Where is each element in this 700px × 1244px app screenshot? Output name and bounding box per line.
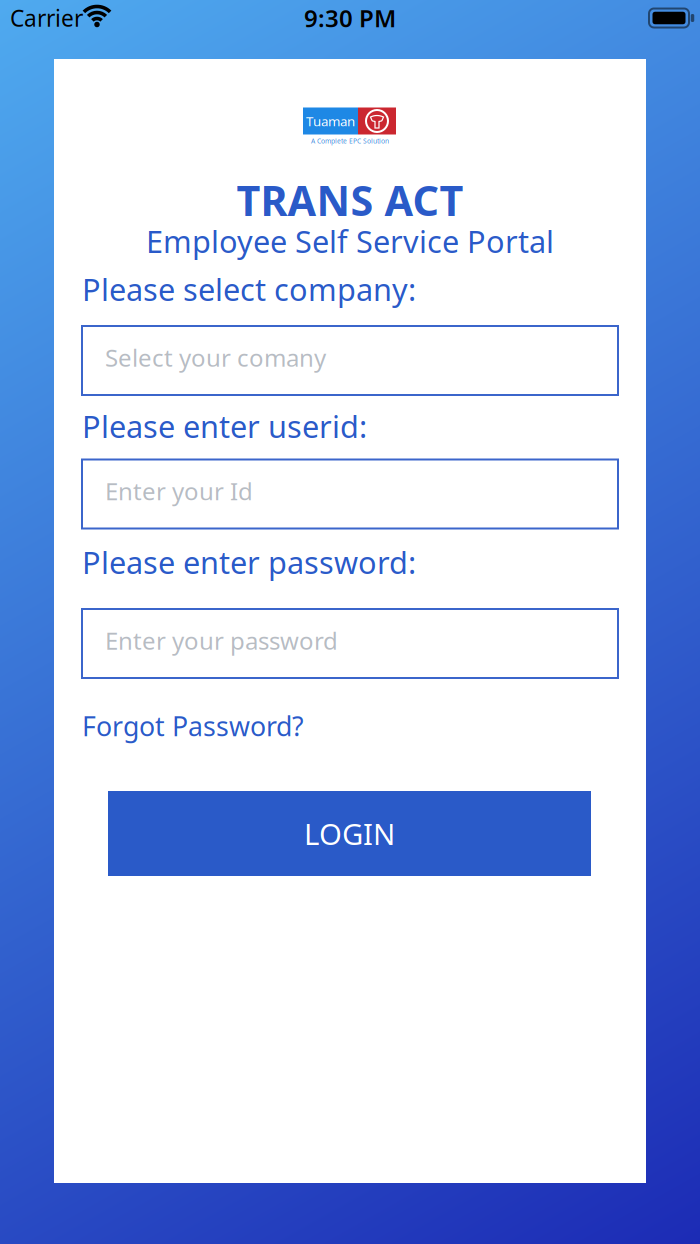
staticText: Forgot Password?: [82, 708, 304, 744]
staticText: Employee Self Service Portal: [146, 221, 554, 261]
staticText: A Complete EPC Solution: [311, 137, 389, 145]
staticText: Please enter userid:: [82, 406, 367, 446]
staticText: Please enter password:: [82, 542, 416, 582]
button[interactable]: LOGIN: [108, 791, 591, 876]
staticText: Tuaman: [306, 112, 355, 130]
staticText: Carrier: [10, 3, 83, 33]
staticText: Select your comany: [105, 342, 326, 373]
button[interactable]: Select your comany: [82, 326, 618, 395]
staticText: TRANS ACT: [236, 173, 463, 227]
button[interactable]: Forgot Password?: [82, 708, 304, 744]
button[interactable]: Enter your password: [82, 609, 618, 678]
staticText: Please select company:: [82, 269, 416, 309]
staticText: Enter your password: [105, 625, 338, 656]
button[interactable]: Enter your Id: [82, 459, 618, 528]
staticText: 9:30 PM: [304, 2, 396, 34]
staticText: Enter your Id: [105, 475, 253, 507]
staticText: LOGIN: [304, 814, 395, 853]
